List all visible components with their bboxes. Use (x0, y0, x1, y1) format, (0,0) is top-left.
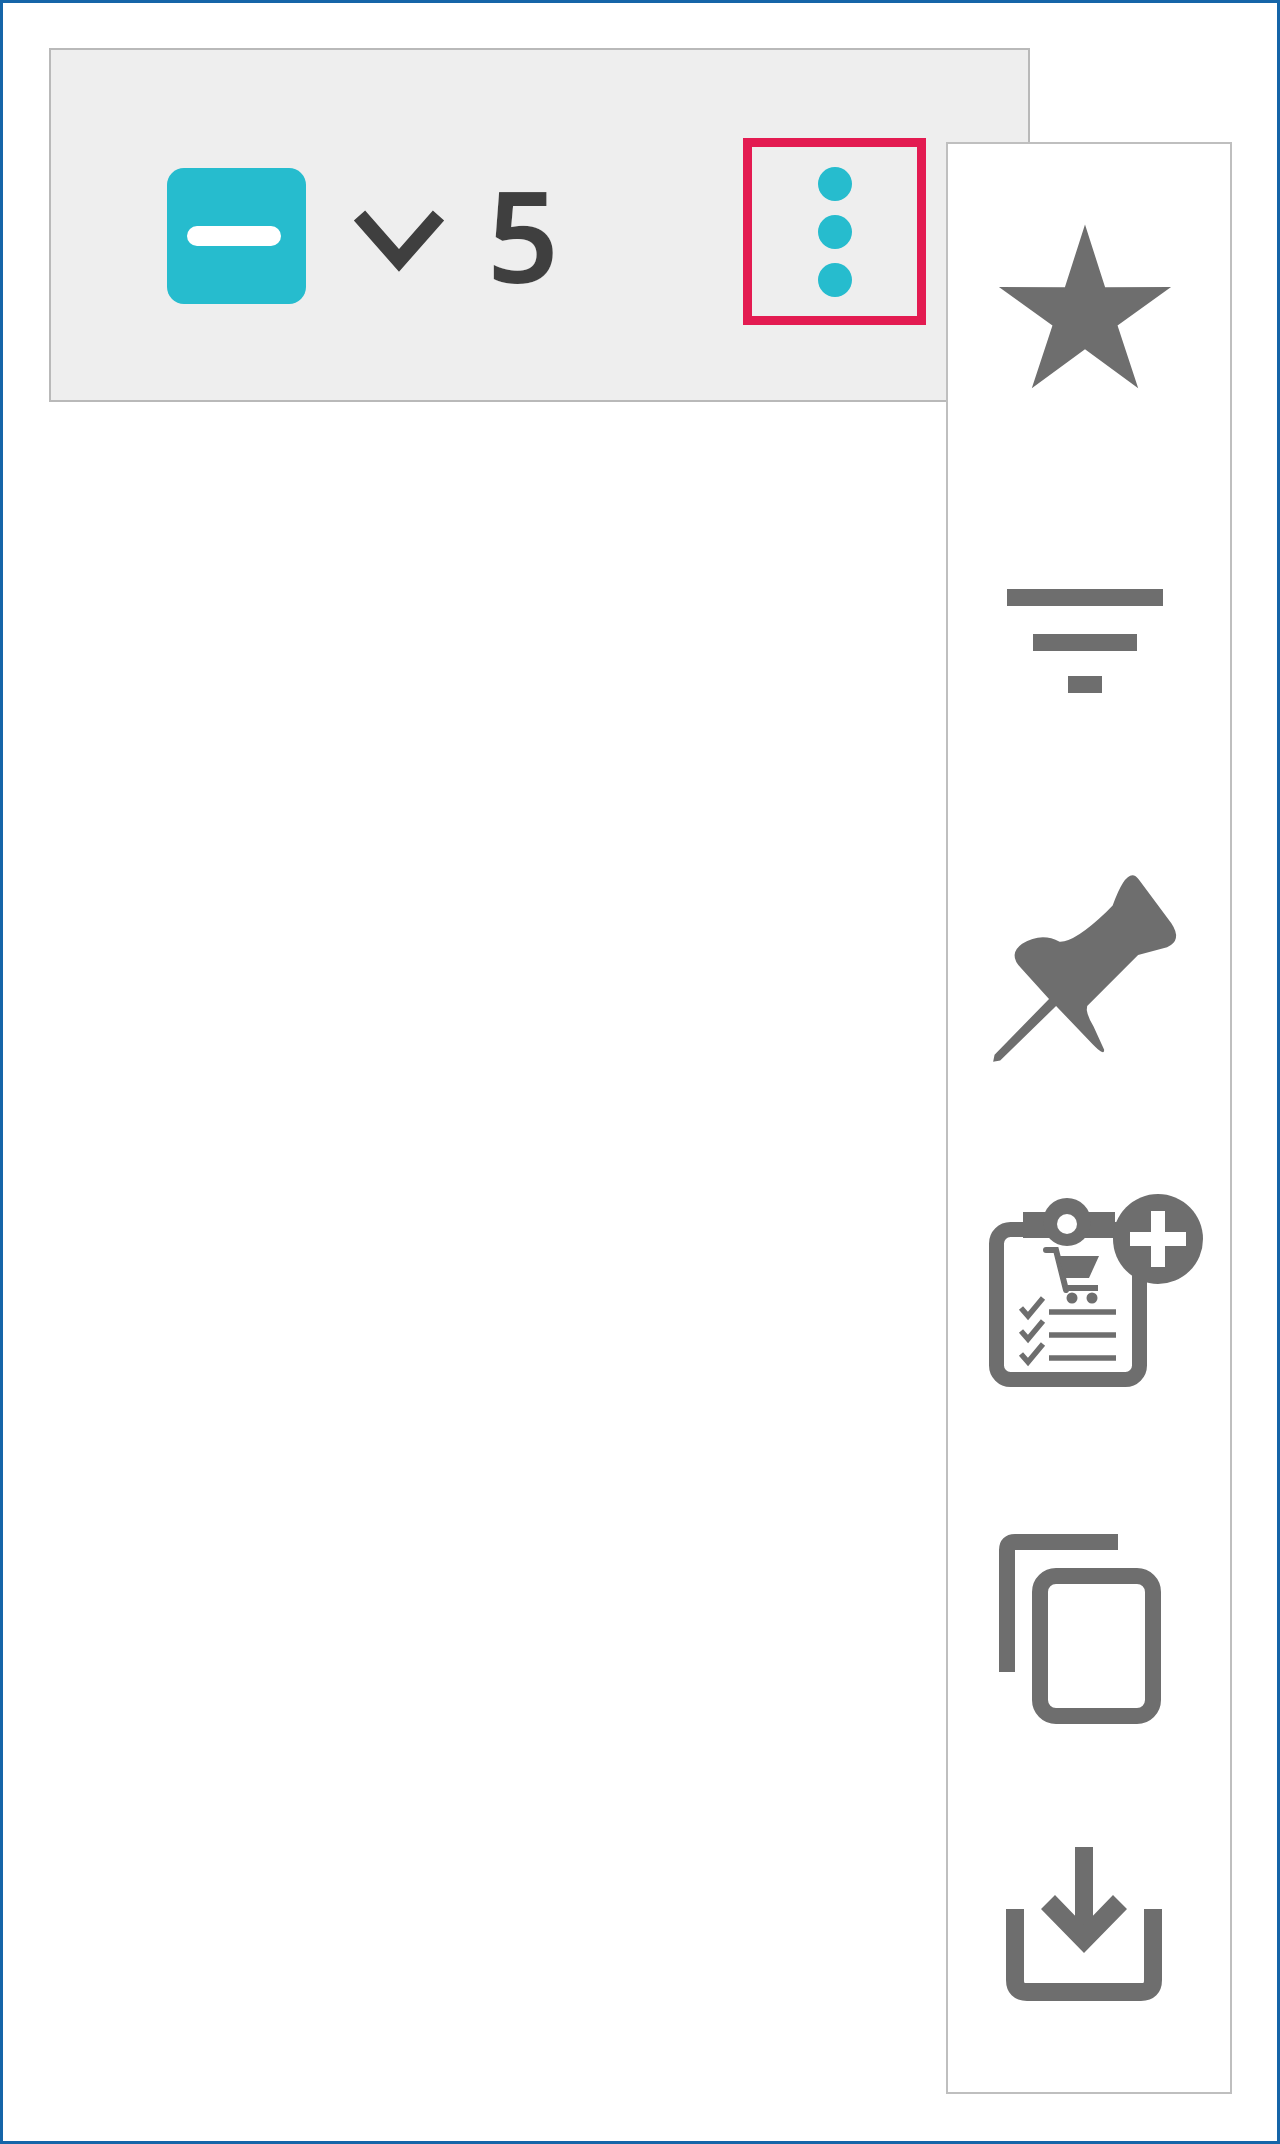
button[interactable]: Sort (946, 467, 1232, 792)
button[interactable]: Collapse (167, 168, 306, 304)
button[interactable]: Pin (946, 792, 1232, 1117)
staticText: 5 (487, 148, 560, 320)
button[interactable]: Add to shopping list (946, 1117, 1232, 1442)
button[interactable]: Download (946, 1767, 1232, 2092)
button[interactable]: More options (743, 138, 926, 325)
button[interactable]: Favorite (946, 142, 1232, 467)
button[interactable]: Copy (946, 1442, 1232, 1767)
